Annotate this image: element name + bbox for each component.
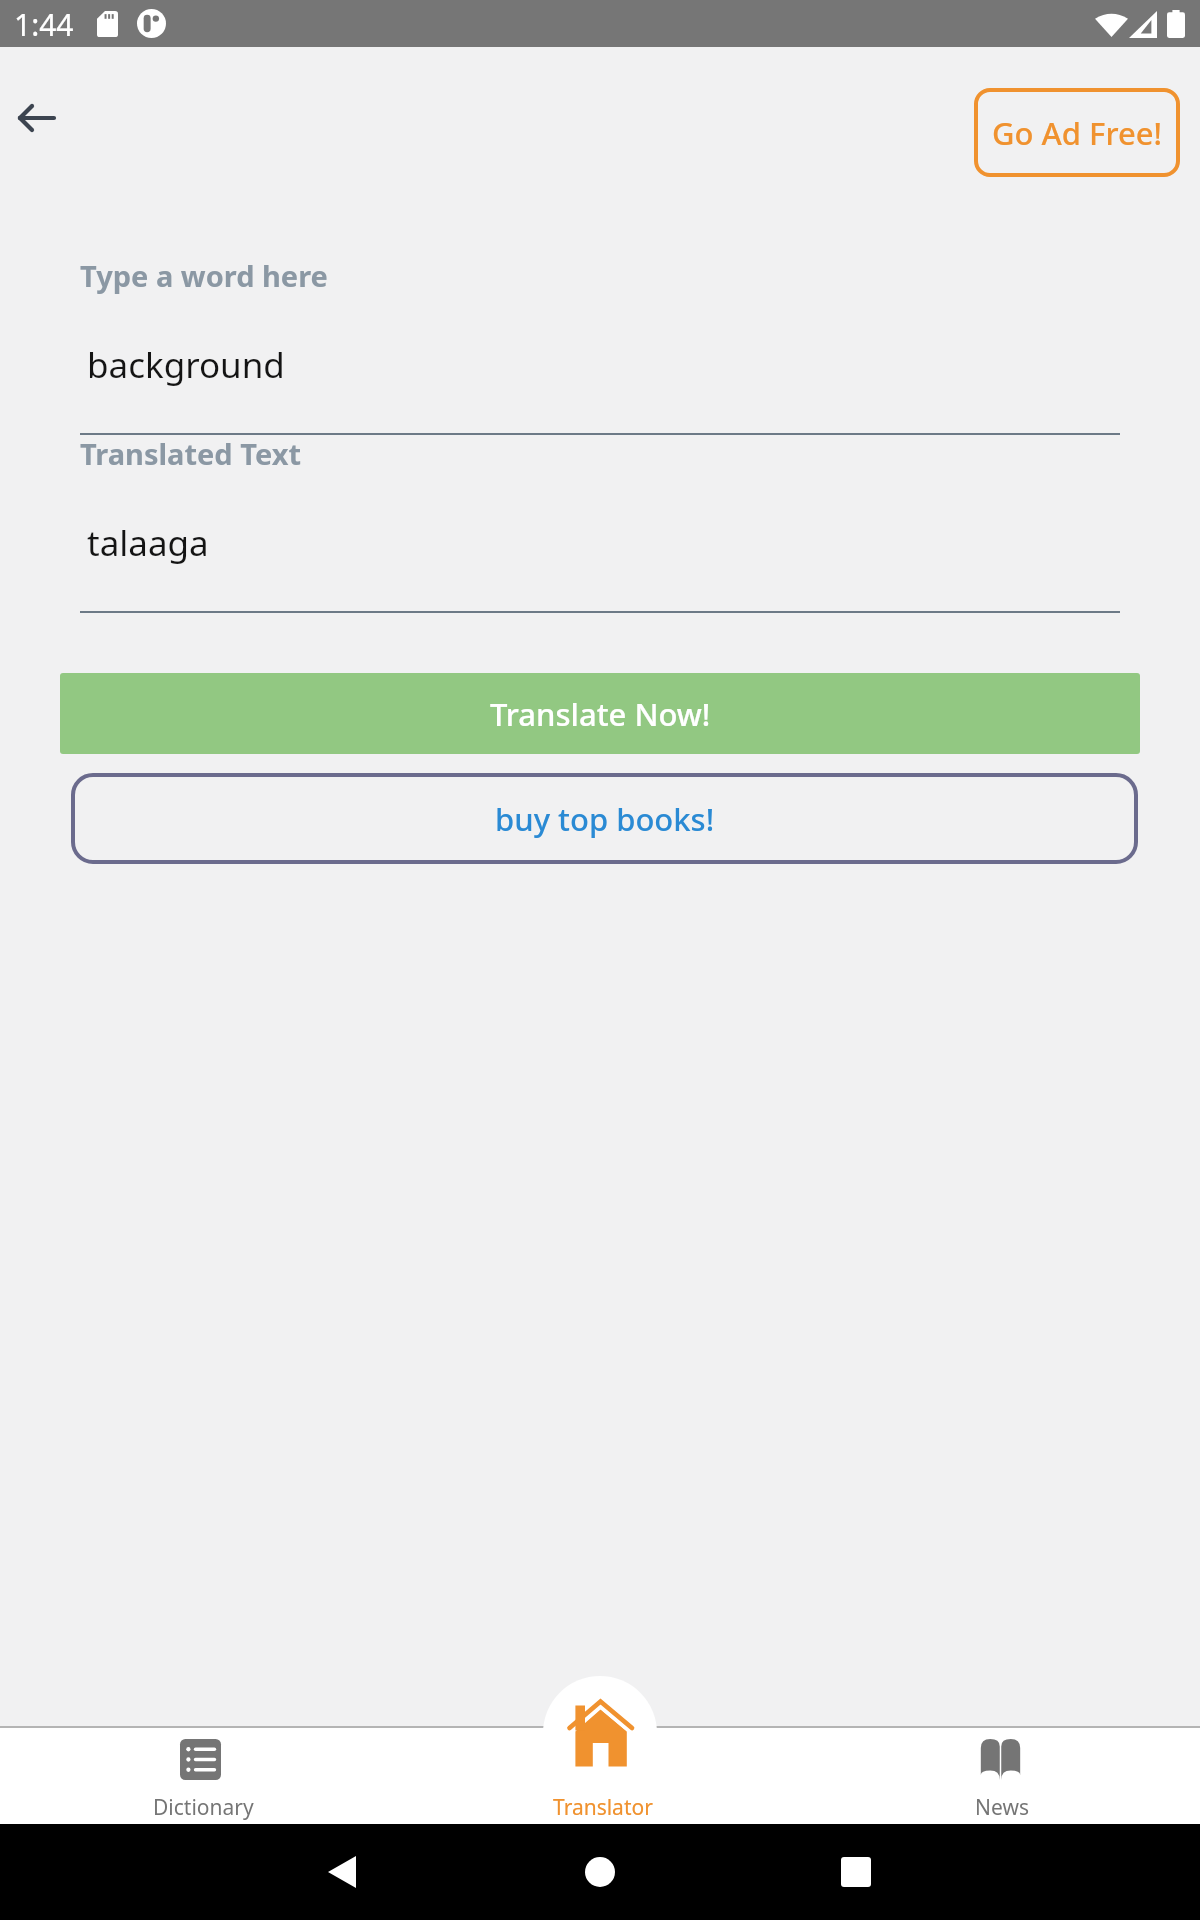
- other: Translator home: [566, 1695, 636, 1765]
- button[interactable]: Translator: [400, 1726, 800, 1824]
- staticText: News: [975, 1793, 1029, 1822]
- button[interactable]: News: [800, 1726, 1200, 1824]
- button[interactable]: Recents: [834, 1850, 878, 1894]
- button[interactable]: Back: [4, 86, 68, 150]
- staticText: Dictionary: [153, 1793, 254, 1822]
- staticText: Translator: [553, 1793, 653, 1822]
- staticText: talaaga: [87, 519, 209, 567]
- staticText: Go Ad Free!: [992, 112, 1163, 154]
- button[interactable]: buy top books!: [71, 773, 1138, 864]
- staticText: background: [87, 341, 285, 389]
- staticText: Type a word here: [80, 256, 328, 295]
- staticText: Translate Now!: [490, 693, 711, 735]
- staticText: 1:44: [14, 4, 74, 45]
- button[interactable]: Back: [320, 1848, 364, 1892]
- button[interactable]: Home: [578, 1850, 622, 1894]
- button[interactable]: Translate Now!: [60, 673, 1140, 754]
- button[interactable]: Dictionary: [0, 1726, 400, 1824]
- staticText: buy top books!: [495, 798, 715, 840]
- button[interactable]: Go Ad Free!: [974, 88, 1180, 177]
- staticText: Translated Text: [80, 434, 302, 473]
